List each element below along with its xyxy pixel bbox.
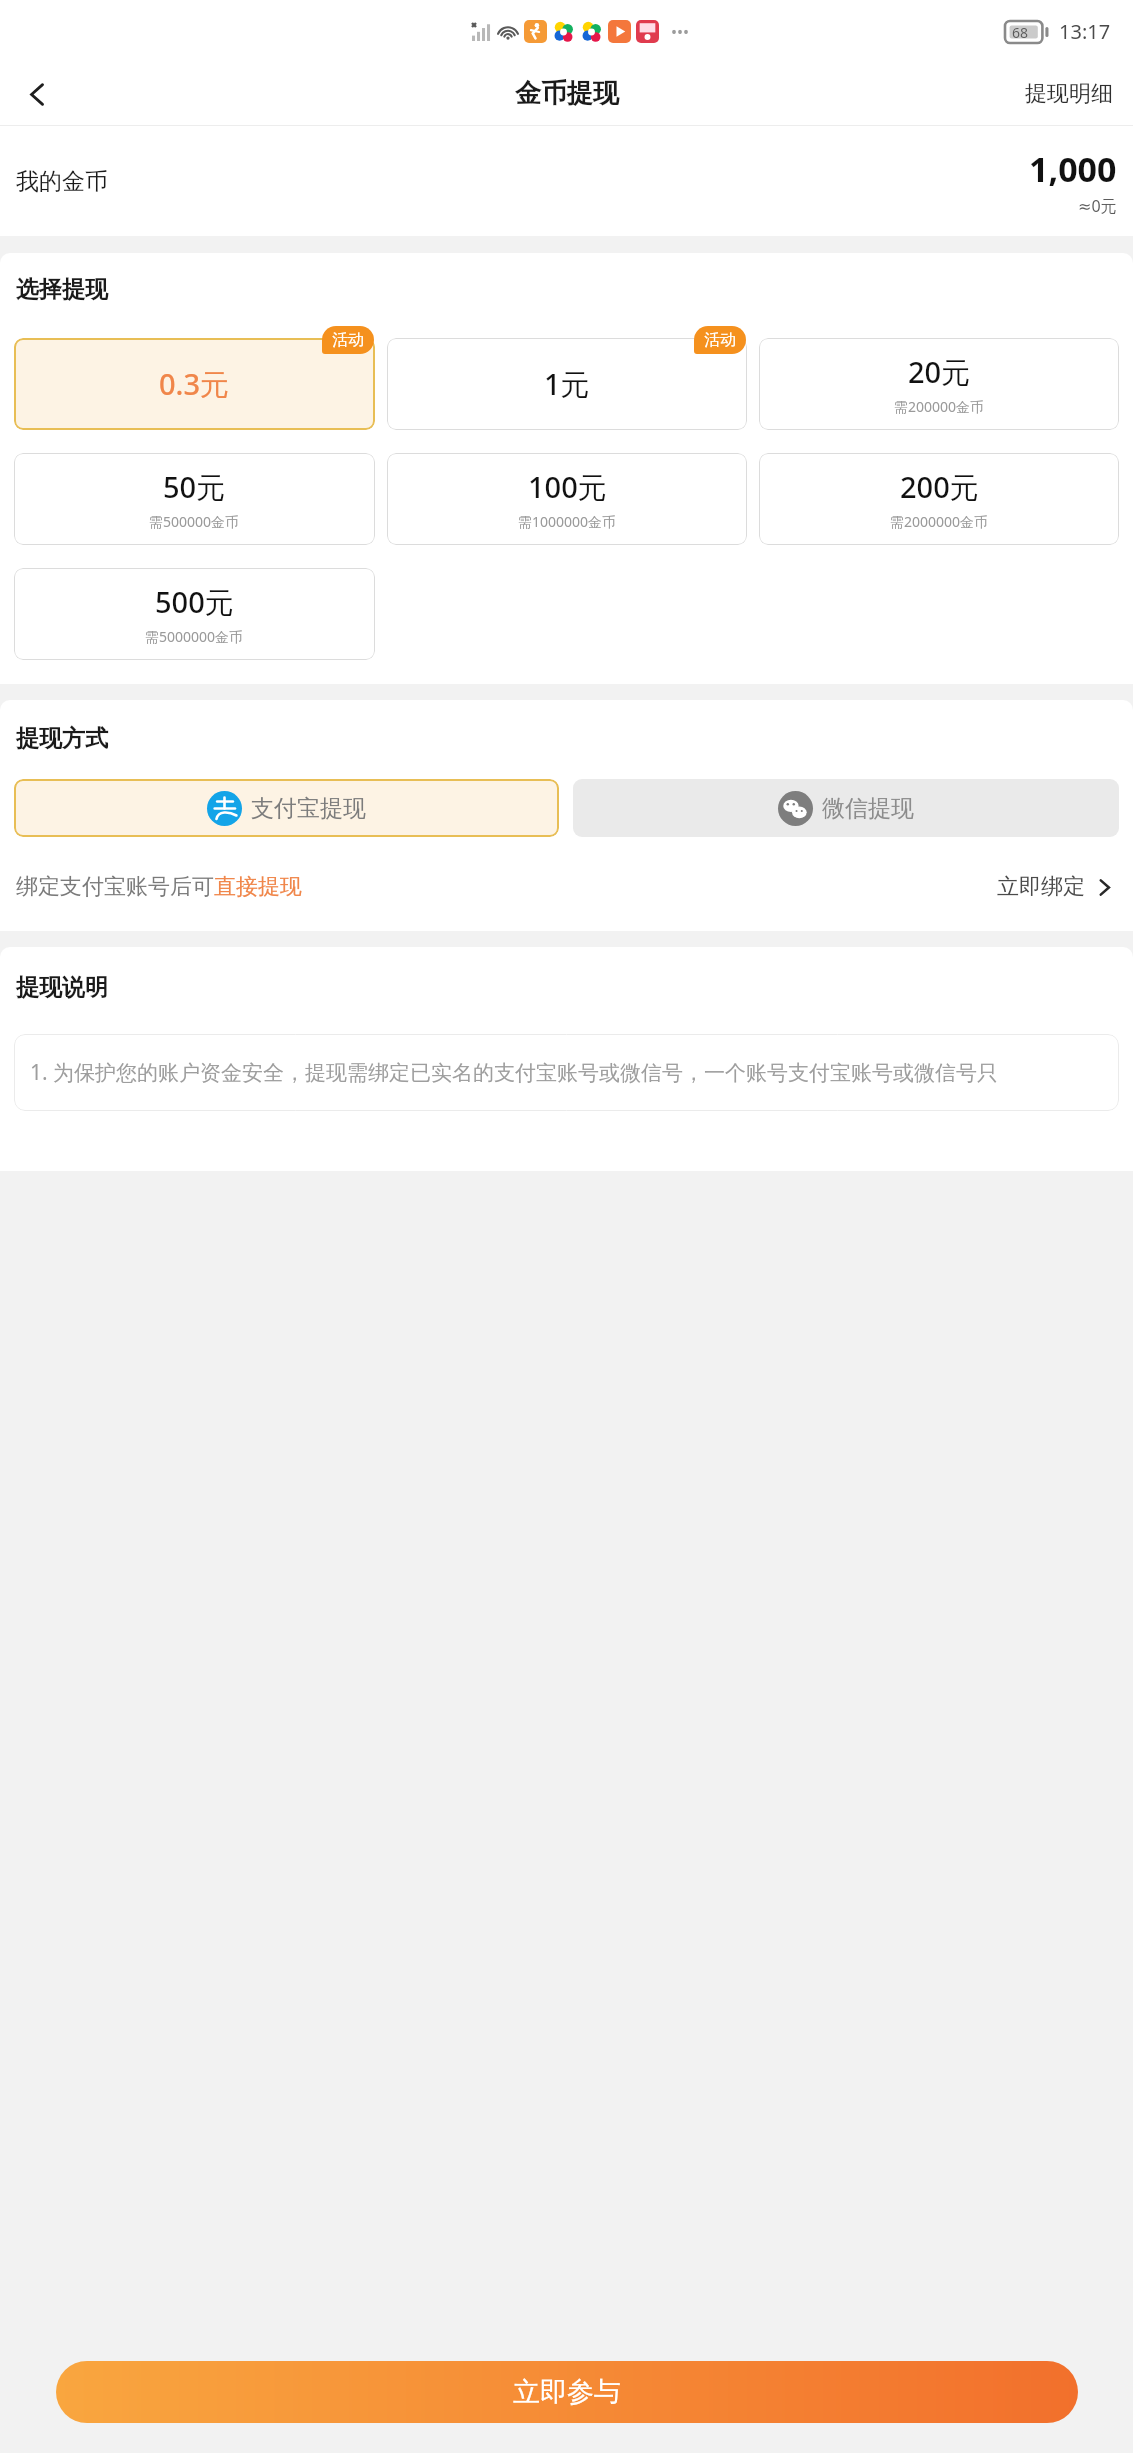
staticText: 需2000000金币 — [890, 512, 989, 531]
staticText: 微信提现 — [822, 794, 914, 823]
staticText: 提现方式 — [16, 724, 108, 753]
staticText: ••• — [671, 21, 690, 43]
button[interactable]: 200元 — [759, 453, 1119, 545]
button[interactable]: 提现明细 — [1015, 70, 1123, 118]
staticText: 1. 为保护您的账户资金安全，提现需绑定已实名的支付宝账号或微信号，一个账号支付… — [30, 1058, 999, 1087]
button[interactable]: 20元 — [759, 338, 1119, 430]
button[interactable]: 500元 — [14, 568, 375, 660]
button[interactable]: 50元 — [14, 453, 375, 545]
button[interactable]: 立即绑定 — [993, 869, 1117, 905]
staticText: 我的金币 — [16, 167, 108, 196]
staticText: 提现明细 — [1025, 80, 1113, 108]
staticText: 立即绑定 — [997, 873, 1085, 901]
staticText: 需5000000金币 — [145, 627, 244, 646]
button[interactable]: 1元 — [387, 338, 747, 430]
staticText: 20元 — [908, 352, 971, 392]
button[interactable]: Back — [8, 65, 66, 123]
staticText: 13:17 — [1059, 18, 1111, 45]
staticText: 100元 — [528, 467, 607, 507]
button[interactable]: 微信提现 — [573, 779, 1119, 837]
button[interactable]: 100元 — [387, 453, 747, 545]
button[interactable]: 支付宝提现 — [14, 779, 559, 837]
button[interactable]: 立即参与 — [56, 2361, 1078, 2423]
staticText: ≈0元 — [1078, 195, 1117, 217]
staticText: 需500000金币 — [149, 512, 240, 531]
staticText: 需1000000金币 — [518, 512, 617, 531]
staticText: 500元 — [155, 582, 234, 622]
staticText: 50元 — [163, 467, 226, 507]
staticText: 选择提现 — [16, 275, 108, 304]
staticText: 1,000 — [1029, 146, 1117, 192]
button[interactable]: 0.3元 — [14, 338, 375, 430]
staticText: 支付宝提现 — [251, 794, 366, 823]
staticText: 1元 — [544, 364, 590, 404]
staticText: 0.3元 — [159, 364, 230, 404]
staticText: 需200000金币 — [894, 397, 985, 416]
staticText: 200元 — [900, 467, 979, 507]
staticText: 68 — [1012, 23, 1029, 42]
staticText: 绑定支付宝账号后可直接提现 — [16, 873, 302, 901]
staticText: 提现说明 — [16, 973, 108, 1002]
staticText: 金币提现 — [515, 77, 619, 110]
staticText: 活动 — [332, 330, 364, 350]
staticText: 活动 — [704, 330, 736, 350]
staticText: 立即参与 — [513, 2375, 621, 2409]
